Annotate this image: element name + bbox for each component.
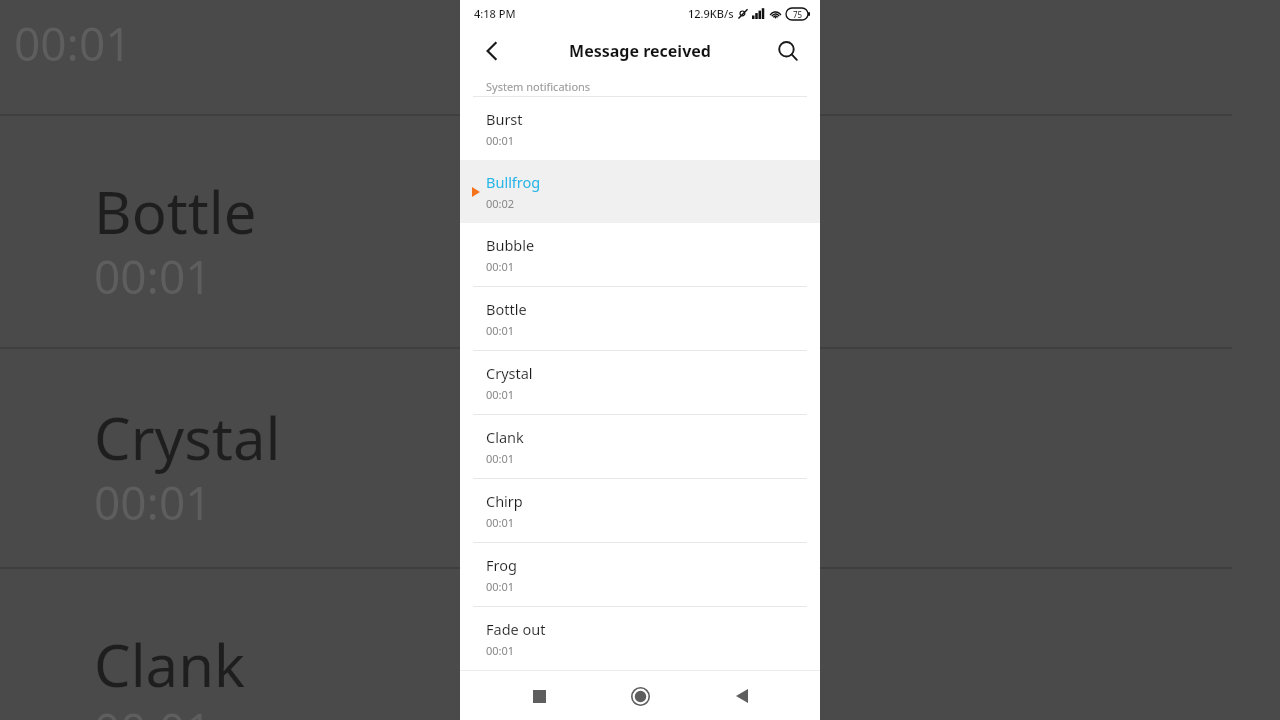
button[interactable]: Recent apps — [516, 673, 562, 719]
staticText: 75 — [793, 9, 803, 20]
staticText: Bottle — [486, 299, 527, 319]
staticText: 00:01 — [486, 643, 515, 658]
staticText: 00:01 — [486, 323, 515, 338]
staticText: Bottle — [94, 172, 257, 251]
staticText: 00:01 — [486, 387, 515, 402]
staticText: Clank — [94, 625, 245, 704]
button[interactable]: Fade out — [460, 607, 820, 670]
button[interactable]: Search — [768, 31, 808, 71]
staticText: Burst — [486, 109, 523, 129]
staticText: Bullfrog — [486, 172, 541, 192]
button[interactable]: Back — [472, 31, 512, 71]
button[interactable]: Crystal — [460, 351, 820, 414]
staticText: Bubble — [486, 235, 535, 255]
button[interactable]: Home — [617, 673, 663, 719]
staticText: 00:01 — [94, 471, 212, 534]
staticText: Crystal — [486, 363, 533, 383]
staticText: Fade out — [486, 619, 546, 639]
staticText: System notifications — [486, 79, 591, 94]
staticText: 00:01 — [94, 245, 212, 308]
staticText: 00:02 — [486, 196, 515, 211]
staticText: 00:01 — [486, 579, 515, 594]
button[interactable]: Chirp — [460, 479, 820, 542]
staticText: 12.9KB/s — [688, 6, 734, 21]
staticText: 00:01 — [486, 451, 515, 466]
staticText: 00:01 — [486, 133, 515, 148]
staticText: Frog — [486, 555, 517, 575]
button[interactable]: Bubble — [460, 223, 820, 286]
button[interactable]: Burst — [460, 97, 820, 160]
button[interactable]: Bottle — [460, 287, 820, 350]
button[interactable]: Clank — [460, 415, 820, 478]
staticText: Chirp — [486, 491, 523, 511]
staticText: 00:01 — [14, 12, 132, 75]
staticText: Clank — [486, 427, 524, 447]
staticText: Message received — [569, 40, 711, 62]
button[interactable]: Back — [719, 673, 765, 719]
button[interactable]: Frog — [460, 543, 820, 606]
staticText: 4:18 PM — [474, 6, 516, 21]
button[interactable]: Bullfrog — [460, 160, 820, 223]
staticText: 00:01 — [486, 515, 515, 530]
staticText: 00:01 — [486, 259, 515, 274]
staticText: Crystal — [94, 398, 281, 477]
staticText: 00:01 — [94, 698, 212, 720]
